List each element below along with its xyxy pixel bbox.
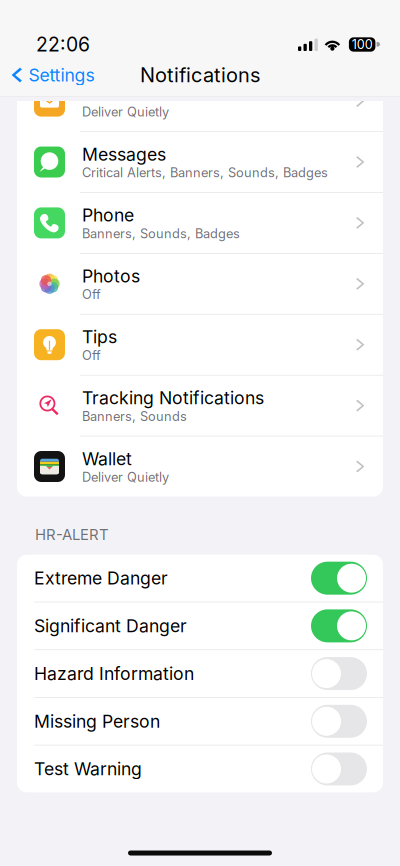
button[interactable]: Hazard Information: [17, 650, 383, 698]
staticText: Deliver Quietly: [82, 104, 169, 119]
button[interactable]: Tracking Notifications: [17, 375, 383, 436]
button[interactable]: Missing Person: [17, 698, 383, 745]
staticText: 100: [352, 37, 373, 52]
staticText: Messages: [82, 144, 166, 165]
button[interactable]: Wallet: [17, 436, 383, 497]
staticText: Notifications: [140, 63, 260, 87]
staticText: Wallet: [82, 448, 132, 469]
staticText: Significant Danger: [34, 615, 187, 636]
staticText: Missing Person: [34, 711, 160, 732]
staticText: Test Warning: [34, 758, 142, 780]
button[interactable]: Photos: [17, 254, 383, 315]
button[interactable]: Test Warning: [17, 745, 383, 792]
staticText: Tips: [82, 326, 117, 348]
button[interactable]: Tips: [17, 315, 383, 375]
staticText: Off: [82, 348, 101, 363]
staticText: Photos: [82, 265, 140, 287]
staticText: Extreme Danger: [34, 567, 168, 589]
staticText: Mail: [82, 83, 116, 104]
staticText: Off: [82, 287, 101, 302]
button[interactable]: Mail: [17, 71, 383, 132]
staticText: Hazard Information: [34, 663, 194, 684]
button[interactable]: Extreme Danger: [17, 555, 383, 602]
button[interactable]: Settings: [0, 58, 103, 92]
staticText: Banners, Sounds: [82, 408, 187, 424]
button[interactable]: Significant Danger: [17, 602, 383, 650]
staticText: Banners, Sounds, Badges: [82, 226, 240, 241]
staticText: Phone: [82, 204, 134, 226]
staticText: Critical Alerts, Banners, Sounds, Badges: [82, 165, 328, 180]
staticText: Deliver Quietly: [82, 469, 169, 485]
button[interactable]: Phone: [17, 193, 383, 254]
staticText: HR-ALERT: [35, 526, 109, 544]
staticText: Settings: [29, 64, 95, 86]
button[interactable]: Messages: [17, 132, 383, 193]
staticText: 22:06: [36, 33, 90, 56]
staticText: Tracking Notifications: [82, 387, 264, 408]
